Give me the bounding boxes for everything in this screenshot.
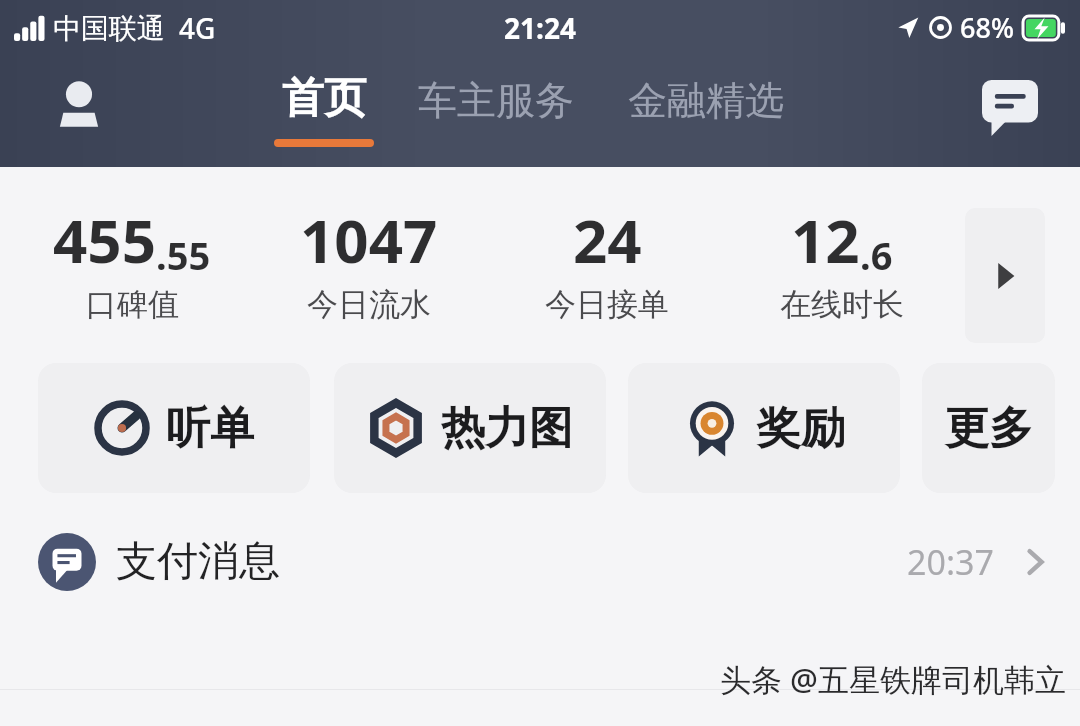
staticText: 热力图	[441, 401, 573, 456]
staticText: 21:24	[504, 9, 576, 47]
button[interactable]: 热力图	[334, 363, 606, 493]
button[interactable]: 24	[518, 199, 696, 324]
staticText: 68%	[960, 9, 1014, 46]
button[interactable]: 奖励	[628, 363, 900, 493]
staticText: 4G	[179, 9, 216, 47]
button[interactable]: 听单	[38, 363, 310, 493]
staticText: 听单	[166, 401, 254, 456]
staticText: 在线时长	[780, 285, 904, 324]
button[interactable]: Messages	[982, 80, 1038, 136]
staticText: 金融精选	[628, 76, 784, 125]
staticText: 首页	[282, 72, 366, 125]
staticText: .6	[860, 229, 893, 281]
staticText: 支付消息	[116, 536, 280, 588]
button[interactable]: 金融精选	[628, 76, 784, 125]
button[interactable]: 车主服务	[418, 76, 574, 125]
staticText: 头条 @五星铁牌司机韩立	[720, 658, 1066, 700]
staticText: 12	[791, 199, 860, 281]
staticText: 1047	[300, 199, 438, 281]
button[interactable]: 455	[42, 199, 222, 324]
button[interactable]: 更多	[922, 363, 1055, 493]
staticText: 455	[53, 199, 156, 281]
staticText: 今日流水	[307, 285, 431, 324]
staticText: 奖励	[757, 401, 845, 456]
staticText: .55	[156, 229, 211, 281]
button[interactable]: Profile	[50, 78, 108, 136]
button[interactable]: 1047	[280, 199, 458, 324]
button[interactable]: 支付消息	[38, 507, 1050, 617]
staticText: 口碑值	[86, 285, 179, 324]
button[interactable]: 12	[753, 199, 931, 324]
staticText: 20:37	[907, 539, 994, 585]
button[interactable]: More stats	[965, 208, 1045, 343]
button[interactable]: 首页	[274, 72, 374, 147]
staticText: 中国联通	[53, 11, 165, 46]
staticText: 更多	[945, 401, 1033, 456]
staticText: 车主服务	[418, 76, 574, 125]
staticText: 24	[573, 199, 642, 281]
staticText: 今日接单	[545, 285, 669, 324]
other: Open payment messages	[1020, 547, 1050, 577]
